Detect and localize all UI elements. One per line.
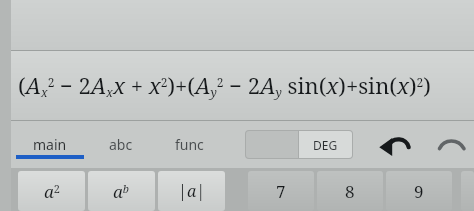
button[interactable]: more keys	[461, 171, 474, 211]
staticText: abc	[109, 135, 133, 154]
staticText: 9	[414, 180, 424, 203]
button[interactable]: absolute value of a	[158, 171, 225, 211]
button[interactable]: Redo	[437, 132, 467, 158]
staticText: 7	[276, 180, 286, 203]
staticText: a2	[44, 180, 60, 203]
button[interactable]: a to the power b	[88, 171, 155, 211]
staticText: ab	[113, 180, 130, 203]
button[interactable]: (Ax2 − 2Axx + x2)+(Ay2 − 2Ay sin(x)+sin(…	[11, 51, 474, 120]
staticText: func	[175, 135, 204, 154]
staticText: (Ax2 − 2Axx + x2)+(Ay2 − 2Ay sin(x)+sin(…	[18, 70, 431, 101]
staticText: 8	[345, 180, 355, 203]
button[interactable]: main	[11, 121, 89, 168]
button[interactable]: abc	[89, 121, 153, 168]
button[interactable]: a squared	[18, 171, 85, 211]
staticText: main	[33, 135, 67, 154]
button[interactable]: 7	[248, 171, 314, 211]
staticText: |a|	[178, 180, 206, 202]
staticText: DEG	[313, 137, 338, 153]
button[interactable]: func	[153, 121, 225, 168]
button[interactable]: Angle unit: degrees	[246, 131, 352, 158]
button[interactable]: Undo	[377, 132, 411, 158]
button[interactable]: 8	[317, 171, 383, 211]
button[interactable]: 9	[386, 171, 452, 211]
